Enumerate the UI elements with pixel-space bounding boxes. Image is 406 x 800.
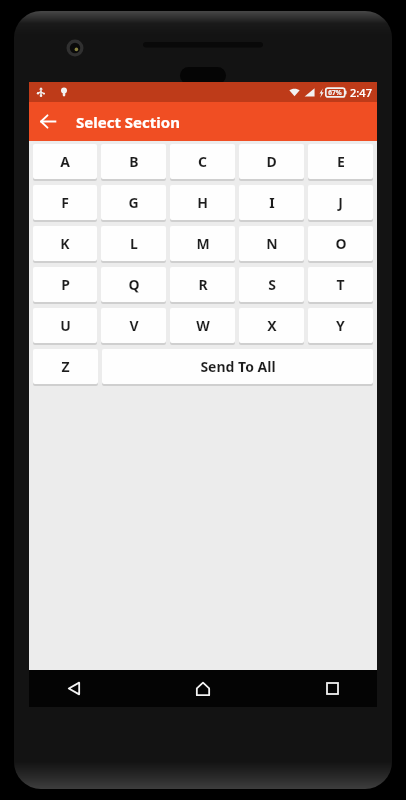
staticText: H — [197, 193, 208, 212]
staticText: J — [338, 193, 343, 212]
staticText: C — [198, 152, 207, 171]
button[interactable]: D — [239, 144, 304, 179]
button[interactable]: S — [239, 267, 304, 302]
button[interactable]: N — [239, 226, 304, 261]
button[interactable]: M — [170, 226, 235, 261]
button[interactable]: J — [308, 185, 373, 220]
staticText: 2:47 — [350, 85, 372, 100]
button[interactable]: C — [170, 144, 235, 179]
button[interactable]: K — [33, 226, 97, 261]
staticText: Send To All — [200, 357, 276, 376]
staticText: L — [130, 234, 138, 253]
staticText: U — [60, 316, 71, 335]
button[interactable]: Navigate up — [29, 102, 68, 141]
staticText: S — [268, 275, 276, 294]
staticText: I — [269, 193, 275, 212]
button[interactable]: I — [239, 185, 304, 220]
staticText: G — [128, 193, 139, 212]
staticText: O — [335, 234, 347, 253]
button[interactable]: U — [33, 308, 97, 343]
staticText: N — [266, 234, 278, 253]
staticText: Z — [61, 357, 70, 376]
staticText: K — [60, 234, 70, 253]
staticText: P — [61, 275, 70, 294]
button[interactable]: Back — [55, 670, 93, 707]
staticText: D — [266, 152, 277, 171]
staticText: V — [129, 316, 139, 335]
staticText: A — [60, 152, 70, 171]
button[interactable]: B — [101, 144, 166, 179]
button[interactable]: F — [33, 185, 97, 220]
staticText: B — [129, 152, 139, 171]
button[interactable]: H — [170, 185, 235, 220]
button[interactable]: Recent apps — [313, 670, 351, 707]
staticText: F — [61, 193, 69, 212]
button[interactable]: T — [308, 267, 373, 302]
button[interactable]: V — [101, 308, 166, 343]
button[interactable]: Z — [33, 349, 98, 384]
button[interactable]: W — [170, 308, 235, 343]
button[interactable]: P — [33, 267, 97, 302]
button[interactable]: R — [170, 267, 235, 302]
staticText: E — [337, 152, 345, 171]
button[interactable]: Q — [101, 267, 166, 302]
button[interactable]: L — [101, 226, 166, 261]
staticText: R — [198, 275, 208, 294]
staticText: Select Section — [76, 112, 180, 132]
staticText: W — [196, 316, 210, 335]
staticText: M — [196, 234, 210, 253]
staticText: Q — [128, 275, 140, 294]
button[interactable]: Send To All — [102, 349, 373, 384]
button[interactable]: E — [308, 144, 373, 179]
button[interactable]: X — [239, 308, 304, 343]
staticText: X — [267, 316, 277, 335]
staticText: 67% — [328, 88, 342, 97]
staticText: Y — [336, 316, 345, 335]
button[interactable]: Home — [184, 670, 222, 707]
button[interactable]: G — [101, 185, 166, 220]
button[interactable]: Y — [308, 308, 373, 343]
button[interactable]: A — [33, 144, 97, 179]
button[interactable]: O — [308, 226, 373, 261]
staticText: T — [336, 275, 345, 294]
